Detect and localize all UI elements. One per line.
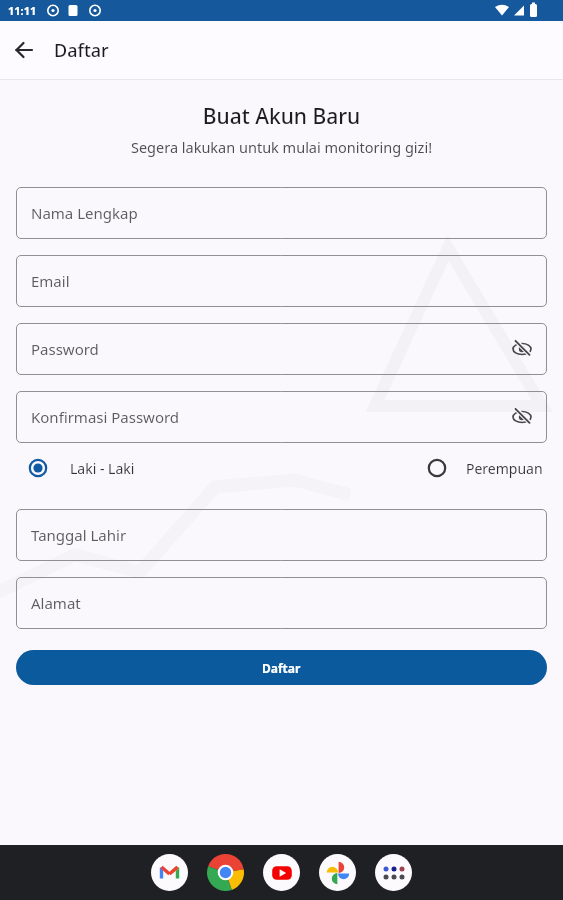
button[interactable] bbox=[375, 854, 412, 891]
staticText: 11:11 bbox=[8, 3, 37, 18]
staticText: Laki - Laki bbox=[70, 459, 135, 478]
staticText: Nama Lengkap bbox=[31, 203, 138, 223]
staticText: Password bbox=[31, 339, 99, 359]
button[interactable]: Perempuan bbox=[427, 458, 547, 478]
button[interactable]: Email bbox=[16, 255, 547, 307]
staticText: Daftar bbox=[262, 660, 301, 676]
staticText: Tanggal Lahir bbox=[31, 525, 127, 545]
button[interactable]: Konfirmasi Password bbox=[16, 391, 547, 443]
button[interactable]: Alamat bbox=[16, 577, 547, 629]
staticText: Daftar bbox=[54, 38, 109, 63]
button[interactable] bbox=[151, 854, 188, 891]
button[interactable] bbox=[207, 854, 244, 891]
button[interactable] bbox=[263, 854, 300, 891]
button[interactable] bbox=[507, 402, 537, 432]
staticText: Alamat bbox=[31, 593, 81, 613]
staticText: Email bbox=[31, 271, 70, 291]
staticText: Segera lakukan untuk mulai monitoring gi… bbox=[16, 137, 547, 157]
button[interactable]: Daftar bbox=[16, 650, 547, 685]
button[interactable]: Tanggal Lahir bbox=[16, 509, 547, 561]
button[interactable] bbox=[507, 334, 537, 364]
staticText: Buat Akun Baru bbox=[16, 102, 547, 131]
button[interactable]: Password bbox=[16, 323, 547, 375]
button[interactable] bbox=[0, 26, 48, 74]
staticText: Konfirmasi Password bbox=[31, 407, 180, 427]
staticText: Perempuan bbox=[466, 459, 543, 478]
button[interactable]: Laki - Laki bbox=[16, 458, 135, 478]
button[interactable] bbox=[319, 854, 356, 891]
button[interactable]: Nama Lengkap bbox=[16, 187, 547, 239]
